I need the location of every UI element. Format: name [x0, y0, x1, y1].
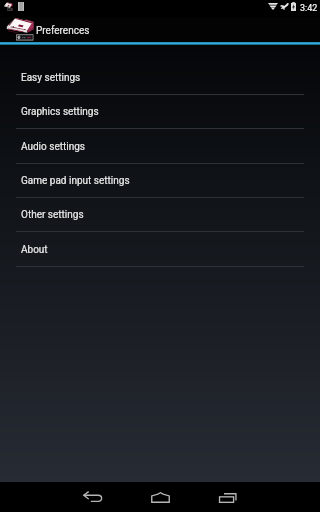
- button[interactable]: Other settings: [0, 198, 320, 232]
- staticText: Graphics settings: [21, 106, 99, 118]
- staticText: Easy settings: [21, 72, 81, 84]
- button[interactable]: Graphics settings: [0, 95, 320, 129]
- staticText: Preferences: [36, 25, 90, 37]
- staticText: Audio settings: [21, 141, 85, 153]
- staticText: 3:42: [300, 3, 318, 14]
- button[interactable]: Game pad input settings: [0, 164, 320, 198]
- button[interactable]: Back: [58, 482, 126, 512]
- staticText: Game pad input settings: [21, 175, 130, 187]
- button[interactable]: Audio settings: [0, 130, 320, 164]
- button[interactable]: Recent apps: [194, 482, 262, 512]
- button[interactable]: Easy settings: [0, 61, 320, 95]
- button[interactable]: About: [0, 233, 320, 267]
- staticText: About: [21, 244, 48, 256]
- staticText: Other settings: [21, 209, 84, 221]
- button[interactable]: Home: [126, 482, 194, 512]
